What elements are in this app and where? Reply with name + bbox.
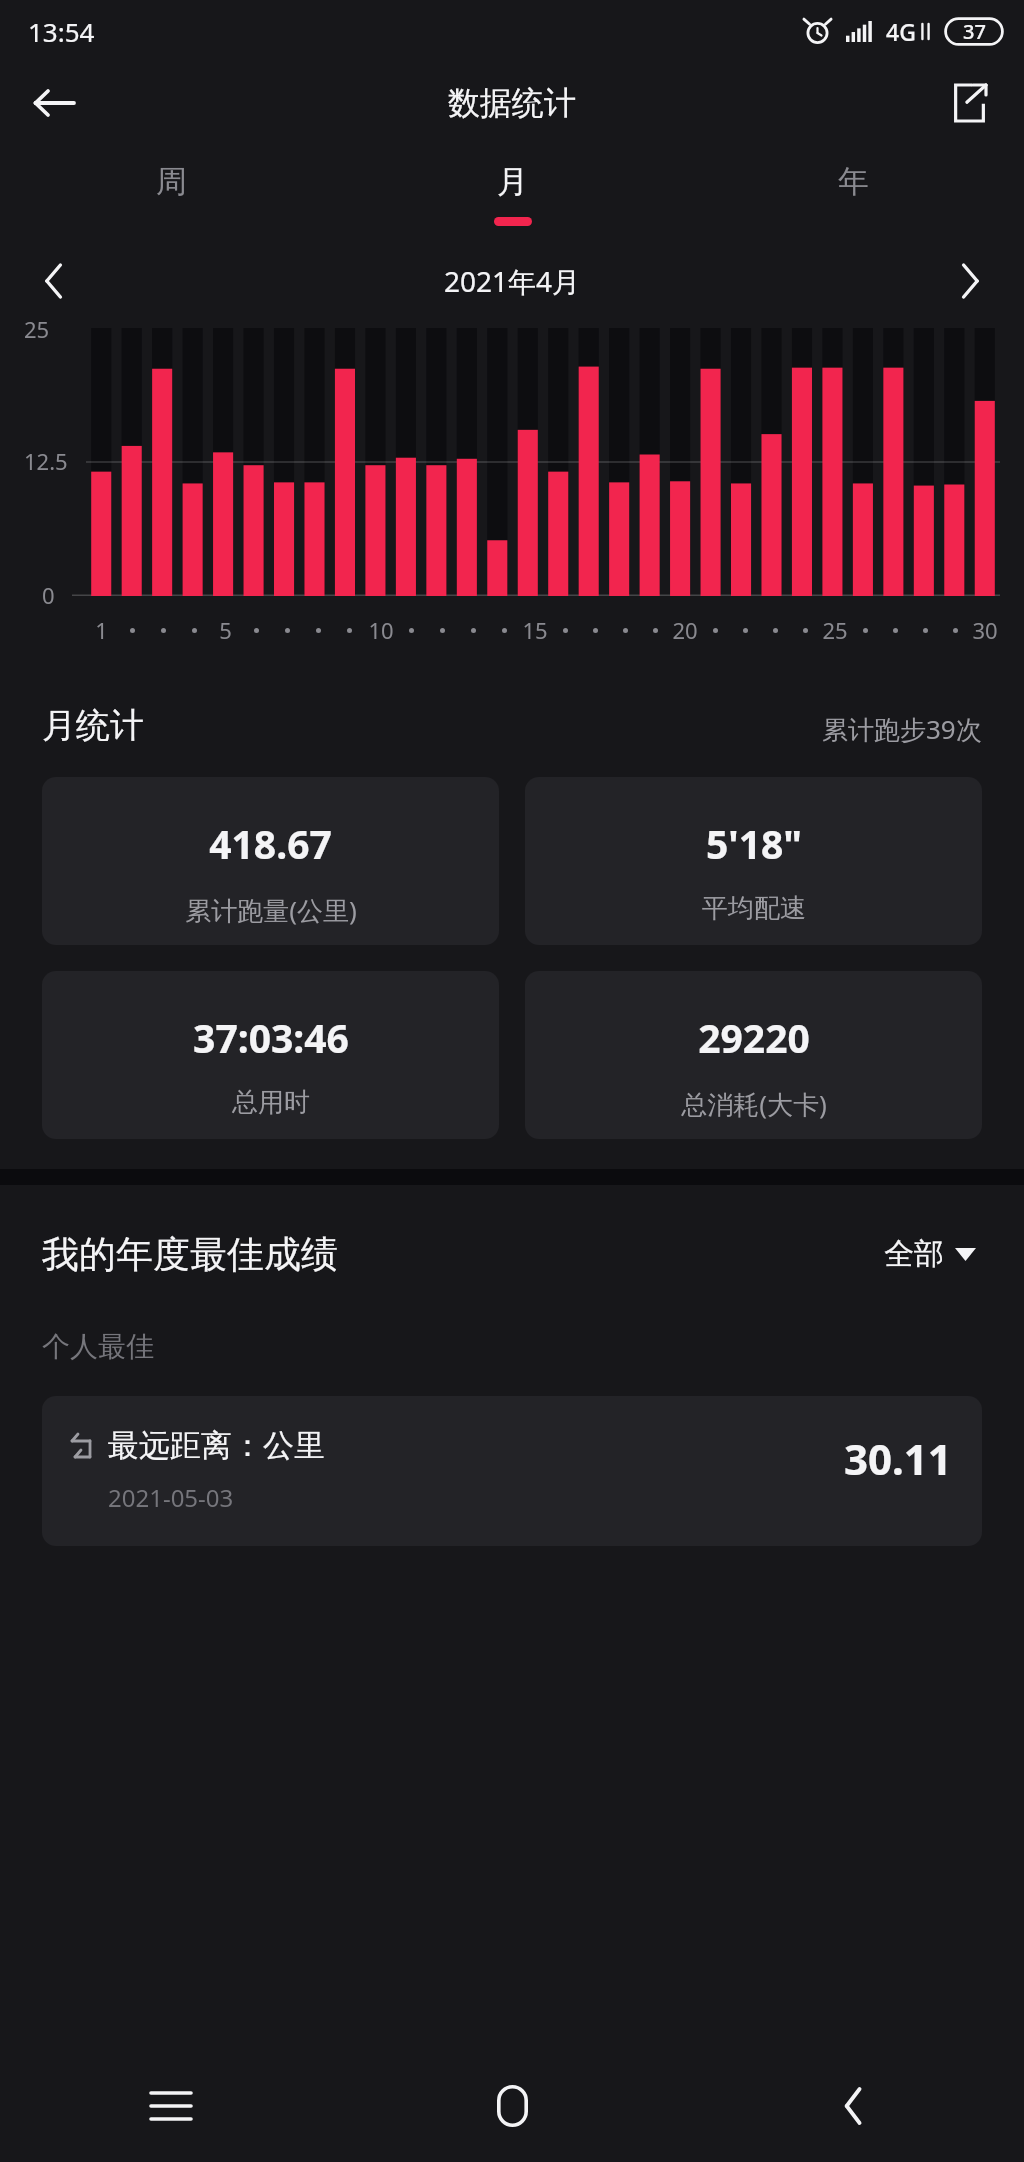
staticText: 418.67 xyxy=(209,817,332,870)
staticText: 20 xyxy=(672,615,698,645)
staticText: 4G xyxy=(886,16,916,47)
staticText: 累计跑步39次 xyxy=(822,711,982,747)
staticText: 月 xyxy=(497,162,528,201)
staticText: 30.11 xyxy=(844,1430,952,1487)
staticText: 0 xyxy=(42,580,55,610)
staticText: 15 xyxy=(522,615,548,645)
button[interactable]: Home xyxy=(342,2050,683,2162)
staticText: 25 xyxy=(822,615,848,645)
staticText: 最远距离：公里 xyxy=(108,1426,325,1465)
staticText: 数据统计 xyxy=(448,83,576,123)
staticText: 年 xyxy=(838,162,869,201)
button[interactable]: 418.67 xyxy=(42,777,499,945)
staticText: 37 xyxy=(963,18,986,45)
button[interactable]: Next month xyxy=(940,251,1000,311)
staticText: 29220 xyxy=(698,1011,810,1064)
staticText: 2021年4月 xyxy=(444,262,581,300)
button[interactable]: 周 xyxy=(0,144,342,244)
button[interactable]: 年 xyxy=(683,144,1024,244)
staticText: 2021-05-03 xyxy=(108,1481,234,1514)
staticText: 全部 xyxy=(884,1235,944,1273)
button[interactable]: 月 xyxy=(342,144,683,244)
staticText: 平均配速 xyxy=(702,892,806,925)
staticText: 我的年度最佳成绩 xyxy=(42,1231,338,1278)
button[interactable]: Back xyxy=(16,65,92,141)
staticText: 月统计 xyxy=(42,704,144,747)
staticText: 12.5 xyxy=(24,446,68,476)
staticText: 25 xyxy=(24,314,50,344)
button[interactable]: 5'18" xyxy=(525,777,982,945)
staticText: 10 xyxy=(368,615,394,645)
staticText: 1 xyxy=(95,615,108,645)
staticText: 13:54 xyxy=(28,14,95,49)
staticText: 5'18" xyxy=(706,817,802,870)
button[interactable]: 最远距离：公里 xyxy=(42,1396,982,1546)
staticText: 总用时 xyxy=(232,1086,310,1119)
button[interactable]: 29220 xyxy=(525,971,982,1139)
button[interactable]: 37:03:46 xyxy=(42,971,499,1139)
button[interactable]: Recents xyxy=(0,2050,342,2162)
button[interactable]: Previous month xyxy=(24,251,84,311)
staticText: 30 xyxy=(972,615,998,645)
button[interactable]: 全部 xyxy=(878,1229,982,1279)
staticText: 个人最佳 xyxy=(42,1329,154,1364)
button[interactable]: Share xyxy=(934,68,1004,138)
staticText: 总消耗(大卡) xyxy=(681,1086,827,1122)
button[interactable]: Back xyxy=(683,2050,1024,2162)
staticText: 5 xyxy=(219,615,232,645)
staticText: 周 xyxy=(156,162,187,201)
staticText: 37:03:46 xyxy=(193,1011,349,1064)
staticText: 累计跑量(公里) xyxy=(185,892,357,928)
